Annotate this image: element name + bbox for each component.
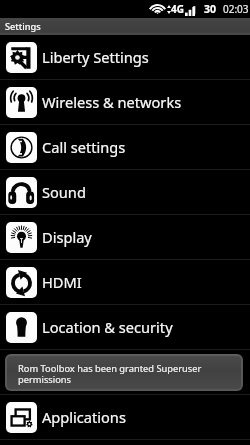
staticText: 02:03 <box>223 2 249 16</box>
button[interactable]: Applications <box>0 395 250 439</box>
staticText: Liberty Settings <box>42 47 149 67</box>
button[interactable]: Location & security <box>0 305 250 349</box>
button[interactable]: HDMI <box>0 260 250 304</box>
staticText: Accounts <box>42 362 105 382</box>
staticText: Settings <box>5 20 41 33</box>
staticText: permissions <box>18 373 72 386</box>
staticText: Sound <box>42 182 86 202</box>
staticText: Location & security <box>42 317 173 337</box>
button[interactable]: Accounts <box>0 350 250 394</box>
button[interactable]: Wireless & networks <box>0 80 250 124</box>
staticText: HDMI <box>42 272 82 292</box>
staticText: Applications <box>42 407 126 427</box>
button[interactable]: Call settings <box>0 125 250 169</box>
staticText: Wireless & networks <box>42 92 182 112</box>
staticText: Rom Toolbox has been granted Superuser <box>18 362 202 375</box>
staticText: Display <box>42 227 92 247</box>
staticText: Call settings <box>42 137 126 157</box>
button[interactable]: Display <box>0 215 250 259</box>
staticText: 4G <box>171 2 184 16</box>
button[interactable]: Sound <box>0 170 250 214</box>
staticText: 30 <box>204 2 217 16</box>
button[interactable]: Liberty Settings <box>0 35 250 79</box>
